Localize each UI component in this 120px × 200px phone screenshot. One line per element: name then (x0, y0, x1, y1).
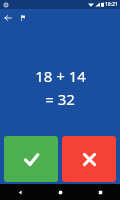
button[interactable]: Wrong (62, 136, 116, 182)
button[interactable]: Home (40, 184, 80, 200)
staticText: 18 + 14 (35, 66, 86, 86)
button[interactable]: Back (0, 10, 16, 26)
button[interactable]: Menu (16, 11, 30, 25)
button[interactable]: Correct (4, 136, 58, 182)
staticText: 10:21 (105, 1, 118, 8)
button[interactable]: Back (0, 184, 40, 200)
staticText: = 32 (45, 89, 75, 109)
button[interactable]: Recents (80, 184, 120, 200)
